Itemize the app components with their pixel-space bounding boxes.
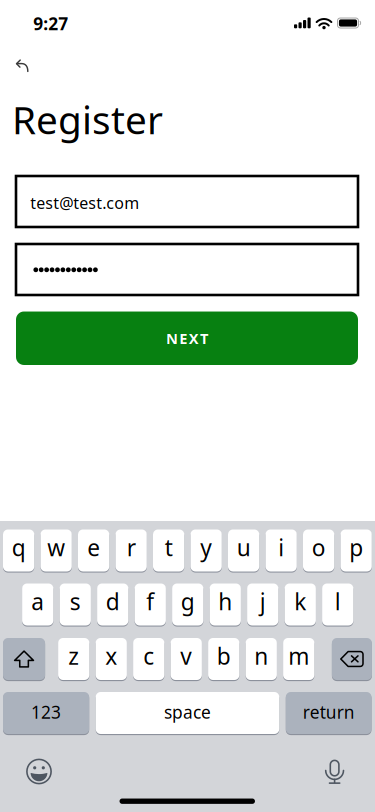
button[interactable]: q [3, 529, 34, 571]
button[interactable]: u [228, 529, 259, 571]
button[interactable]: 123 [3, 692, 89, 734]
button[interactable]: w [40, 529, 72, 571]
button[interactable]: c [133, 638, 164, 680]
staticText: Register [12, 93, 163, 145]
staticText: return [303, 700, 355, 723]
staticText: a [31, 586, 44, 616]
staticText: p [349, 532, 363, 562]
button[interactable]: s [60, 583, 91, 625]
button[interactable]: Dictation [324, 759, 345, 784]
staticText: i [278, 532, 284, 562]
button[interactable]: Delete [332, 638, 372, 680]
button[interactable]: j [247, 583, 278, 625]
staticText: f [146, 586, 154, 616]
button[interactable]: x [96, 638, 127, 680]
staticText: w [47, 532, 65, 562]
button[interactable]: o [303, 529, 334, 571]
staticText: n [254, 641, 268, 671]
staticText: b [217, 641, 231, 671]
staticText: 9:27 [33, 12, 68, 35]
staticText: q [12, 532, 26, 562]
staticText: k [294, 586, 306, 616]
button[interactable]: t [153, 529, 184, 571]
button[interactable]: m [283, 638, 314, 680]
button[interactable]: v [171, 638, 202, 680]
button[interactable]: r [115, 529, 147, 571]
staticText: y [200, 532, 212, 562]
staticText: l [335, 586, 341, 616]
staticText: o [312, 532, 326, 562]
staticText: test@test.com [30, 192, 139, 213]
staticText: h [218, 586, 232, 616]
button[interactable]: b [208, 638, 239, 680]
button[interactable]: n [246, 638, 277, 680]
staticText: c [143, 641, 154, 671]
button[interactable]: y [190, 529, 222, 571]
staticText: m [288, 641, 309, 671]
button[interactable]: i [265, 529, 297, 571]
button[interactable]: space [96, 692, 279, 734]
button[interactable]: z [58, 638, 89, 680]
button[interactable]: NEXT [16, 311, 358, 365]
button[interactable]: f [135, 583, 166, 625]
staticText: space [164, 700, 211, 723]
staticText: s [70, 586, 81, 616]
button[interactable]: Shift [3, 638, 45, 680]
staticText: u [237, 532, 251, 562]
staticText: r [127, 532, 136, 562]
button[interactable]: return [286, 692, 371, 734]
button[interactable]: Back [6, 50, 46, 82]
staticText: g [181, 586, 195, 616]
staticText: NEXT [166, 328, 208, 348]
staticText: x [105, 641, 117, 671]
staticText: v [180, 641, 192, 671]
button[interactable]: l [322, 583, 353, 625]
button[interactable]: e [78, 529, 109, 571]
staticText: z [68, 641, 79, 671]
button[interactable]: Emoji [26, 758, 52, 784]
button[interactable]: a [22, 583, 53, 625]
staticText: t [165, 532, 173, 562]
button[interactable]: k [285, 583, 316, 625]
button[interactable]: p [340, 529, 372, 571]
staticText: j [260, 586, 266, 616]
staticText: 123 [31, 700, 61, 723]
button[interactable]: h [210, 583, 241, 625]
button[interactable]: d [97, 583, 128, 625]
staticText: e [87, 532, 100, 562]
staticText: d [106, 586, 120, 616]
button[interactable]: g [172, 583, 203, 625]
